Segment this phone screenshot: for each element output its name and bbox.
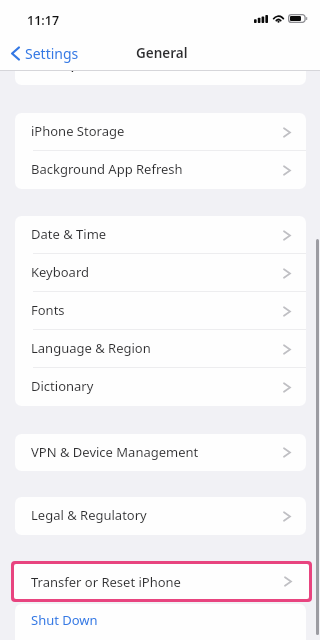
button[interactable]: Keyboard: [15, 254, 306, 292]
staticText: General: [136, 44, 188, 62]
staticText: VPN & Device Management: [31, 443, 199, 461]
button[interactable]: iPhone Storage: [15, 113, 306, 151]
staticText: y: [69, 71, 76, 72]
button[interactable]: Background App Refresh: [15, 151, 306, 189]
staticText: Shut Down: [31, 611, 98, 629]
staticText: Language & Region: [31, 339, 151, 357]
button[interactable]: Date & Time: [15, 216, 306, 254]
button[interactable]: Fonts: [15, 292, 306, 330]
staticText: 11:17: [27, 12, 60, 29]
staticText: Fonts: [31, 301, 65, 319]
staticText: Transfer or Reset iPhone: [31, 573, 181, 591]
staticText: Legal & Regulatory: [31, 506, 147, 524]
staticText: Background App Refresh: [31, 160, 183, 178]
staticText: Dictionary: [31, 377, 94, 395]
other: Back: [11, 46, 20, 61]
button[interactable]: Language & Region: [15, 330, 306, 368]
staticText: Keyboard: [31, 263, 90, 281]
staticText: iPhone Storage: [31, 122, 125, 140]
button[interactable]: Shut Down: [15, 604, 306, 640]
button[interactable]: Legal & Regulatory: [15, 497, 306, 535]
button[interactable]: VPN & Device Management: [15, 434, 306, 471]
staticText: Date & Time: [31, 225, 107, 243]
button[interactable]: Transfer or Reset iPhone: [14, 564, 309, 599]
staticText: Settings: [25, 44, 79, 63]
button[interactable]: Back: [5, 39, 89, 68]
button[interactable]: Dictionary: [15, 368, 306, 406]
